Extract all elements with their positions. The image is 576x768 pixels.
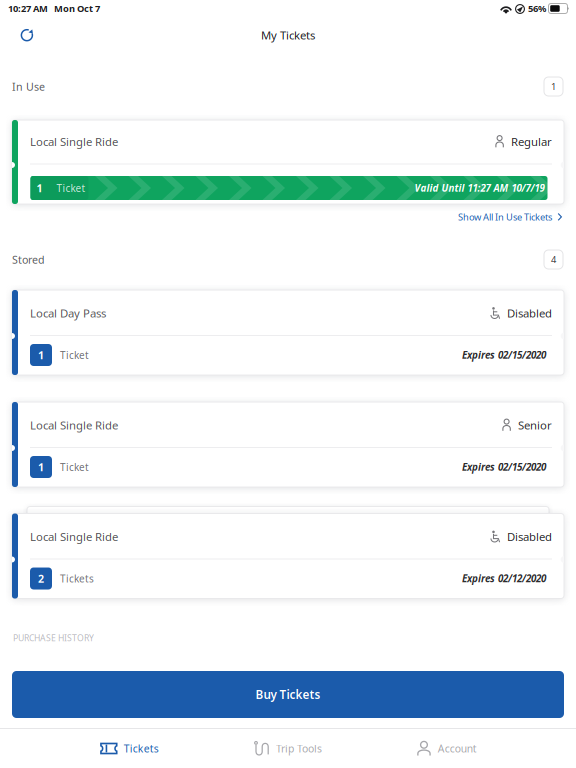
staticText: Tickets [124,741,159,756]
staticText: Local Single Ride [30,134,118,149]
staticText: Show All In Use Tickets [458,211,552,223]
button[interactable]: Local Single Ride [0,502,576,596]
staticText: Senior [518,417,552,433]
button[interactable]: Account [367,729,526,768]
button[interactable]: Refresh [0,17,54,53]
staticText: 10:27 AM [8,2,48,15]
staticText: 1 [38,348,44,362]
staticText: Regular [511,134,552,149]
staticText: Stored [12,252,45,267]
staticText: 2 [38,571,44,586]
staticText: Local Single Ride [30,417,118,433]
staticText: Ticket [60,348,89,362]
button[interactable]: Local Single Ride [0,120,576,204]
staticText: Disabled [507,529,552,544]
staticText: Local Single Ride [30,529,118,544]
staticText: Mon Oct 7 [54,2,100,15]
staticText: Disabled [507,305,552,321]
button[interactable]: Show All In Use Tickets [444,204,576,230]
staticText: Expires 02/15/2020 [462,460,546,474]
staticText: Valid Until 11:27 AM 10/7/19 [414,181,544,195]
staticText: Expires 02/12/2020 [462,572,546,585]
staticText: 1 [38,460,44,474]
staticText: 4 [551,253,556,266]
staticText: PURCHASE HISTORY [13,632,94,644]
button[interactable]: Local Day Pass [0,289,576,376]
staticText: In Use [12,79,45,94]
button[interactable]: Trip Tools [209,729,367,768]
staticText: Local Day Pass [30,305,106,321]
staticText: 56% [528,2,546,15]
staticText: My Tickets [261,27,315,43]
staticText: Ticket [56,181,85,195]
staticText: 1 [36,181,42,195]
button[interactable]: Local Single Ride [0,401,576,488]
staticText: Ticket [60,460,89,474]
button[interactable]: Tickets [50,729,209,768]
staticText: Buy Tickets [255,686,320,702]
staticText: 1 [551,80,556,93]
staticText: Account [438,741,477,756]
staticText: Trip Tools [276,741,322,756]
staticText: Expires 02/15/2020 [462,348,546,362]
button[interactable]: Buy Tickets [0,667,576,728]
staticText: Tickets [60,572,94,585]
